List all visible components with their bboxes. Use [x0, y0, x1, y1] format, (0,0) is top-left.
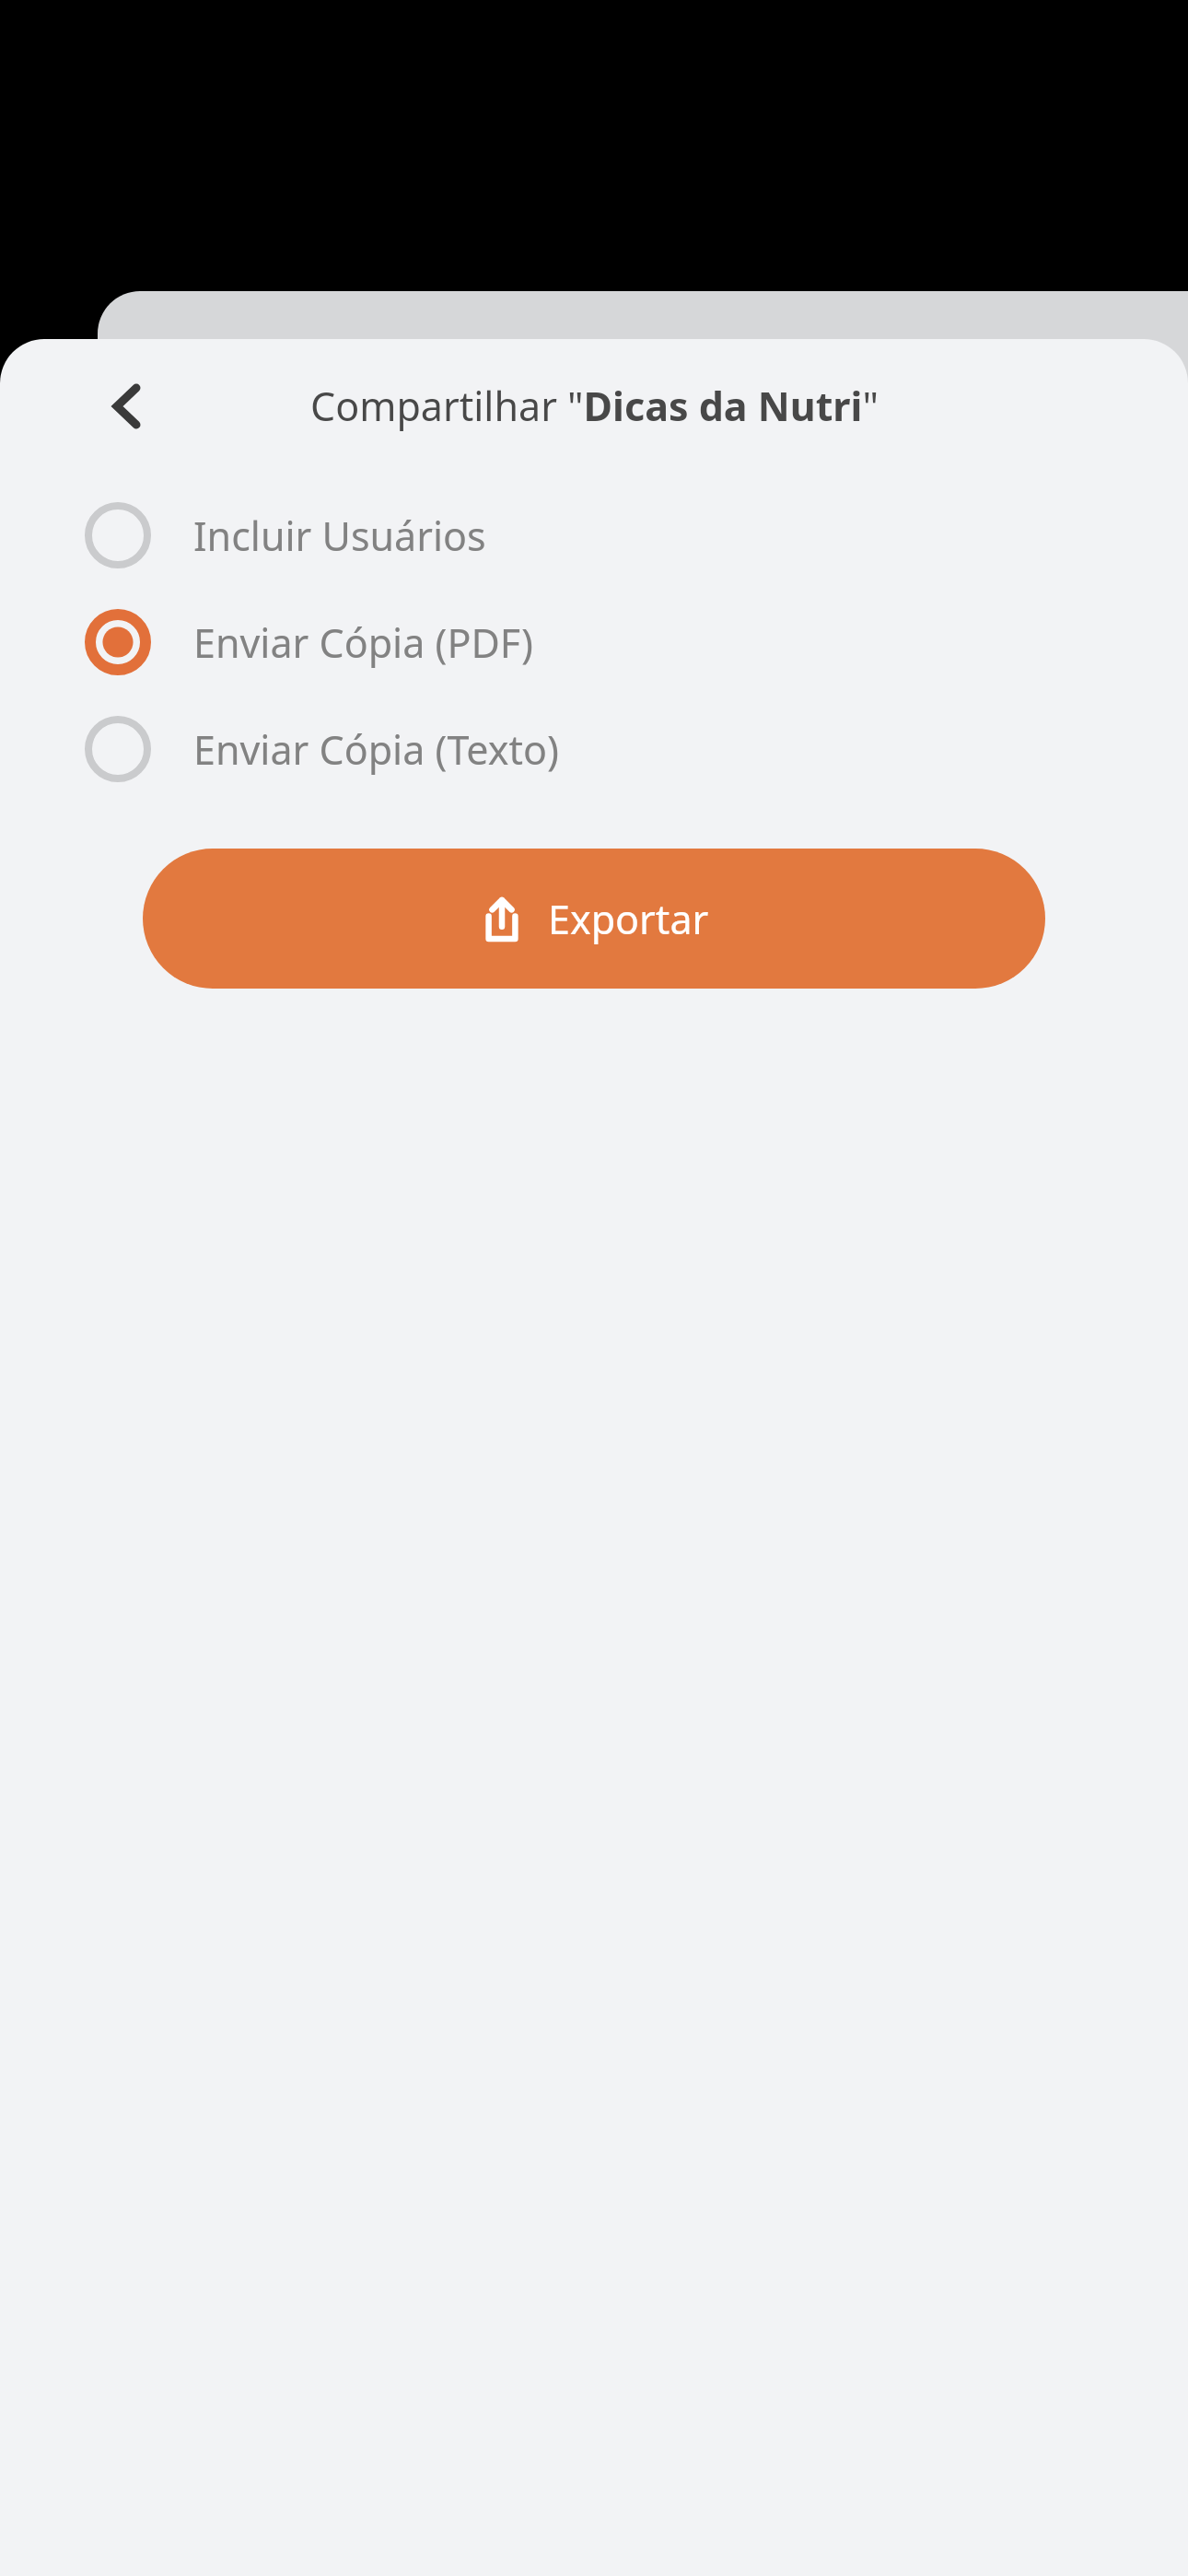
button[interactable]: Exportar: [143, 849, 1045, 989]
button[interactable]: Voltar: [85, 364, 169, 449]
button[interactable]: Enviar Cópia (PDF): [0, 589, 1188, 696]
staticText: Incluir Usuários: [193, 509, 486, 563]
staticText: Enviar Cópia (PDF): [193, 615, 533, 670]
button[interactable]: Incluir Usuários: [0, 482, 1188, 589]
staticText: Compartilhar "Dicas da Nutri": [310, 379, 879, 433]
button[interactable]: Enviar Cópia (Texto): [0, 696, 1188, 802]
staticText: Enviar Cópia (Texto): [193, 722, 559, 777]
staticText: Exportar: [548, 892, 709, 946]
